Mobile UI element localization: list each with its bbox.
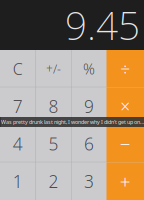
button[interactable]: 9 [72,87,106,125]
staticText: − [120,131,131,156]
button[interactable]: × [106,87,144,125]
staticText: Was pretty drunk last night, I wonder wh… [1,118,144,126]
staticText: 9 [84,95,94,118]
staticText: 2 [49,170,59,193]
button[interactable]: 7 [0,87,35,125]
staticText: 5 [49,132,59,155]
button[interactable]: 5 [36,125,71,162]
staticText: C [13,58,23,79]
button[interactable]: % [72,50,106,87]
staticText: 8 [49,95,59,118]
button[interactable]: 6 [72,125,106,162]
staticText: × [120,95,130,118]
button[interactable]: + [106,162,144,200]
staticText: 1 [13,170,23,193]
staticText: 7 [13,95,23,118]
staticText: ÷ [120,57,130,80]
button[interactable]: 4 [0,125,35,162]
staticText: +/- [46,61,61,77]
staticText: 4 [13,132,23,155]
staticText: + [120,169,131,194]
button[interactable]: 3 [72,162,106,200]
button[interactable]: − [106,125,144,162]
button[interactable]: 1 [0,162,35,200]
button[interactable]: 8 [36,87,71,125]
staticText: % [83,59,95,78]
button[interactable]: C [0,50,35,87]
staticText: 3 [84,170,94,193]
button[interactable]: 2 [36,162,71,200]
staticText: 6 [84,132,94,155]
staticText: 9.45 [65,0,140,51]
button[interactable]: +/- [36,50,71,87]
button[interactable]: ÷ [106,50,144,87]
